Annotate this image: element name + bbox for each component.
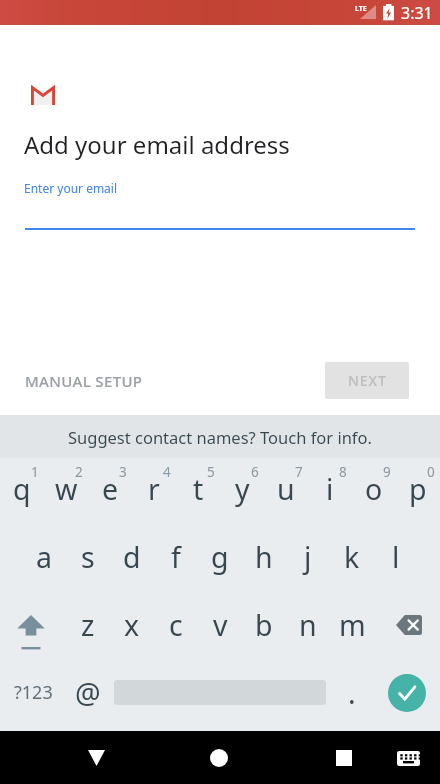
staticText: @ [75,674,101,713]
staticText: o [365,470,383,509]
button[interactable]: 5 [176,458,220,526]
button[interactable]: ?123 [0,662,66,731]
staticText: c [169,606,183,645]
button[interactable]: h [242,526,286,594]
staticText: 5 [207,463,215,481]
staticText: p [409,470,427,509]
button[interactable]: 9 [352,458,396,526]
staticText: 2 [75,463,83,481]
staticText: v [213,606,228,645]
staticText: h [255,538,273,577]
button[interactable]: g [198,526,242,594]
staticText: 0 [427,463,435,481]
staticText: g [211,538,229,577]
button[interactable]: f [154,526,198,594]
button[interactable]: Home [196,735,242,781]
staticText: ?123 [14,680,53,705]
staticText: . [348,674,356,713]
staticText: LTE [355,4,367,14]
button[interactable]: @ [66,662,110,731]
button[interactable]: 4 [132,458,176,526]
button[interactable]: k [330,526,374,594]
staticText: 6 [251,463,259,481]
staticText: Add your email address [24,128,290,161]
button[interactable]: Recents [321,735,367,781]
button[interactable]: 8 [308,458,352,526]
button[interactable]: Switch keyboard [385,735,431,781]
staticText: s [81,538,95,577]
staticText: 4 [163,463,171,481]
staticText: Enter your email [24,180,118,196]
staticText: y [235,470,250,509]
button[interactable]: b [242,594,286,662]
staticText: t [193,470,204,509]
button[interactable]: Space [110,662,330,731]
button[interactable]: v [198,594,242,662]
staticText: n [299,606,317,645]
button[interactable]: s [66,526,110,594]
staticText: e [102,470,119,509]
staticText: f [171,538,181,577]
button[interactable]: Enter [374,662,440,731]
button[interactable]: c [154,594,198,662]
staticText: 8 [339,463,347,481]
button[interactable]: 6 [220,458,264,526]
staticText: r [148,470,160,509]
button[interactable]: d [110,526,154,594]
staticText: MANUAL SETUP [25,371,143,391]
button[interactable]: Suggest contact names? Touch for info. [0,415,440,458]
staticText: 3 [119,463,127,481]
staticText: 9 [383,463,391,481]
staticText: z [81,606,95,645]
staticText: 1 [31,463,39,481]
button[interactable]: a [22,526,66,594]
button[interactable]: 7 [264,458,308,526]
button[interactable]: Back [73,735,119,781]
button[interactable]: 3 [88,458,132,526]
button[interactable]: 0 [396,458,440,526]
staticText: q [13,470,31,509]
button[interactable]: l [374,526,418,594]
button[interactable]: m [330,594,374,662]
button[interactable]: MANUAL SETUP [13,362,155,399]
button[interactable]: 2 [44,458,88,526]
button[interactable]: Backspace [374,594,440,662]
staticText: x [124,606,140,645]
staticText: 3:31 [401,2,433,24]
button[interactable]: . [330,662,374,731]
staticText: l [392,538,400,577]
button[interactable]: Shift [0,594,66,662]
staticText: k [344,538,360,577]
staticText: j [304,538,312,577]
staticText: Suggest contact names? Touch for info. [68,426,372,448]
staticText: d [123,538,141,577]
staticText: w [55,470,78,509]
staticText: a [36,538,52,577]
staticText: i [326,470,334,509]
button[interactable]: j [286,526,330,594]
button[interactable]: 1 [0,458,44,526]
button[interactable]: n [286,594,330,662]
staticText: 7 [295,463,303,481]
staticText: u [277,470,295,509]
button[interactable]: z [66,594,110,662]
button[interactable]: x [110,594,154,662]
staticText: NEXT [348,371,387,390]
button[interactable]: NEXT [325,362,409,399]
staticText: b [255,606,273,645]
staticText: m [339,606,366,645]
